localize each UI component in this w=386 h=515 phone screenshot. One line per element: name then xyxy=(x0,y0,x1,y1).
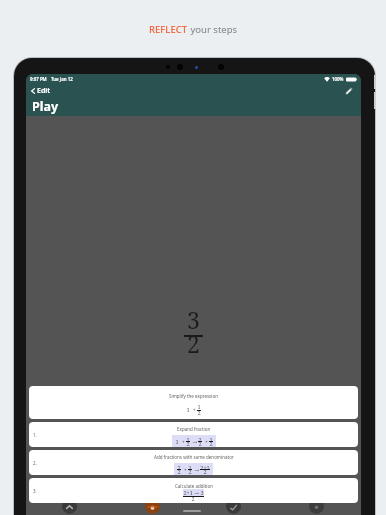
staticText: + xyxy=(179,438,186,444)
staticText: 2 xyxy=(203,468,207,474)
staticText: + xyxy=(202,438,209,444)
button[interactable]: 2. xyxy=(29,450,358,475)
staticText: 1 xyxy=(188,464,192,470)
staticText: 2 xyxy=(209,440,213,446)
button[interactable]: Profile xyxy=(309,499,324,515)
staticText: 2. xyxy=(33,460,37,466)
button[interactable]: Check xyxy=(226,499,241,515)
button[interactable]: Edit xyxy=(343,85,354,96)
staticText: 1 xyxy=(186,436,190,442)
button[interactable]: Simplify the expression xyxy=(29,386,358,419)
staticText: your steps xyxy=(188,23,238,36)
staticText: Simplify the expression xyxy=(169,393,218,399)
staticText: 2 xyxy=(188,468,192,474)
staticText: 9:07 PM xyxy=(30,76,47,82)
staticText: → xyxy=(192,466,200,472)
button[interactable]: 1. xyxy=(29,422,358,447)
staticText: 1 xyxy=(209,436,213,442)
staticText: 2 xyxy=(186,440,190,446)
staticText: 2 xyxy=(197,409,201,417)
staticText: → xyxy=(190,438,198,444)
staticText: 1 xyxy=(197,403,201,411)
staticText: 1 xyxy=(175,438,179,444)
staticText: 3 xyxy=(187,304,200,335)
staticText: 2 xyxy=(187,328,200,359)
staticText: REFLECT xyxy=(149,23,188,36)
staticText: Edit xyxy=(37,86,51,96)
staticText: 1 xyxy=(186,406,190,414)
staticText: Calculate addition xyxy=(175,483,213,489)
staticText: 2 xyxy=(198,440,202,446)
button[interactable]: 3. xyxy=(29,478,358,503)
staticText: 2 xyxy=(177,464,181,470)
staticText: 3. xyxy=(33,488,37,494)
staticText: Add fractions with same denominator xyxy=(154,454,234,460)
staticText: 2+1 xyxy=(200,464,210,470)
button[interactable]: Record xyxy=(145,499,160,515)
button[interactable]: Edit xyxy=(29,86,51,96)
staticText: + xyxy=(181,466,188,472)
staticText: 2+1 → 3 xyxy=(183,489,204,497)
staticText: Expand fraction xyxy=(177,426,211,432)
staticText: Tue Jan 12 xyxy=(51,76,73,82)
staticText: 100% xyxy=(332,76,344,82)
staticText: 1. xyxy=(33,432,37,438)
staticText: 2 xyxy=(198,436,202,442)
staticText: + xyxy=(190,406,197,414)
staticText: 2 xyxy=(191,495,195,503)
staticText: Play xyxy=(32,98,59,115)
button[interactable]: Home xyxy=(62,499,77,515)
staticText: 2 xyxy=(177,468,181,474)
